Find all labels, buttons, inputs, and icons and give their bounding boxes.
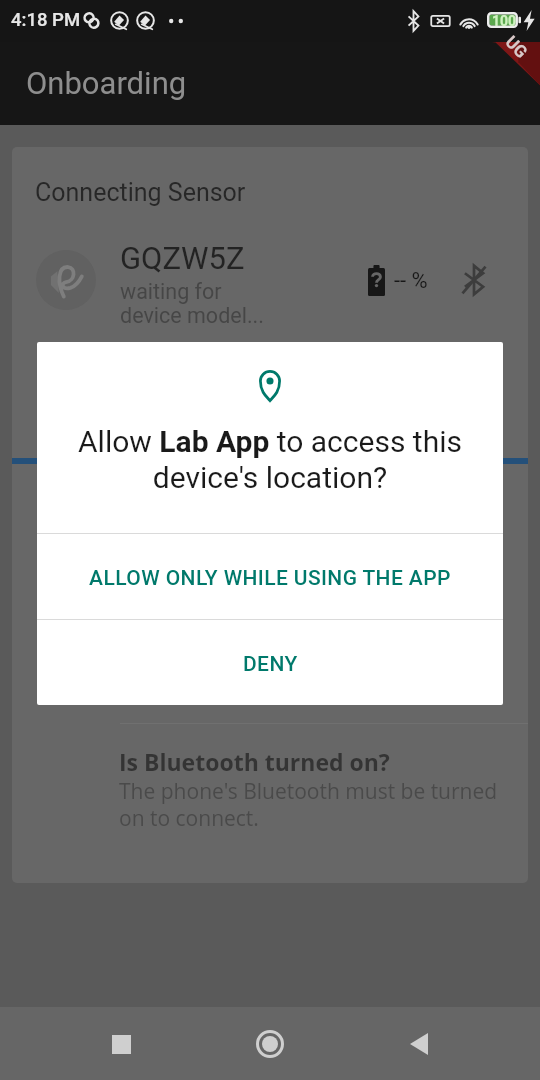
button[interactable]: Recents — [93, 1016, 149, 1072]
staticText: -- % — [394, 268, 428, 294]
button[interactable]: DENY — [37, 620, 503, 705]
staticText: DENY — [243, 652, 298, 677]
staticText: 4:18 PM — [11, 9, 81, 31]
staticText: 100 — [492, 13, 517, 29]
staticText: The phone's Bluetooth must be turned on … — [119, 777, 498, 832]
staticText: GQZW5Z — [120, 240, 245, 276]
staticText: Is Bluetooth turned on? — [119, 746, 390, 777]
button[interactable]: Back — [391, 1016, 447, 1072]
staticText: waiting for device model... — [120, 279, 264, 328]
staticText: UG — [501, 32, 532, 62]
button[interactable]: Home — [242, 1016, 298, 1072]
button[interactable]: ALLOW ONLY WHILE USING THE APP — [37, 534, 503, 619]
staticText: Connecting Sensor — [35, 178, 246, 207]
staticText: ALLOW ONLY WHILE USING THE APP — [89, 566, 451, 591]
staticText: Allow Lab App to access this device's lo… — [45, 424, 495, 495]
staticText: Onboarding — [26, 65, 187, 101]
